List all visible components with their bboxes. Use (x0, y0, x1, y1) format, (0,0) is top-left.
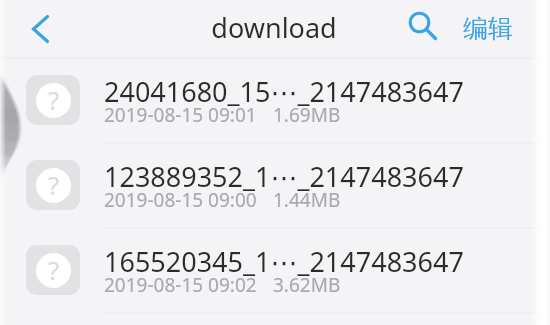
staticText: 2019-08-15 09:01 (104, 102, 257, 128)
staticText: 24041680_15⋯_2147483647 (104, 73, 464, 110)
staticText: download (211, 9, 337, 46)
staticText: ? (48, 83, 60, 117)
staticText: ? (48, 253, 60, 287)
staticText: 编辑 (463, 13, 513, 44)
button[interactable]: ? (0, 58, 550, 143)
staticText: 165520345_1⋯_2147483647 (104, 243, 464, 280)
staticText: 2019-08-15 09:02 (104, 272, 257, 298)
staticText: 123889352_1⋯_2147483647 (104, 158, 464, 195)
staticText: 3.62MB (273, 272, 341, 298)
staticText: 1.44MB (273, 187, 341, 213)
staticText: 1.69MB (273, 102, 341, 128)
button[interactable]: Search (401, 9, 441, 49)
staticText: ? (48, 168, 60, 202)
button[interactable]: Back (18, 7, 62, 51)
staticText: 2019-08-15 09:00 (104, 187, 257, 213)
button[interactable]: ? (0, 228, 550, 313)
button[interactable]: 编辑 (463, 14, 513, 45)
button[interactable]: ? (0, 143, 550, 228)
